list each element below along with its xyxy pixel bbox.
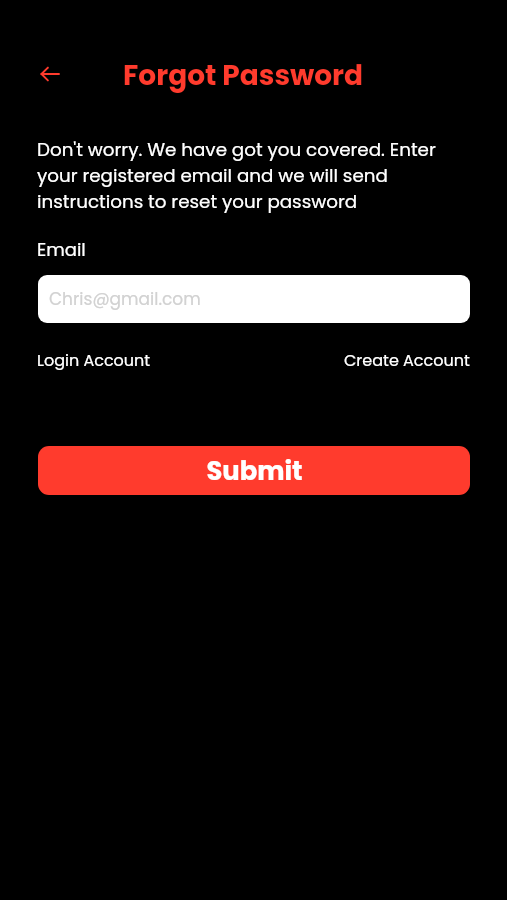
button[interactable]: Submit	[38, 446, 470, 495]
button[interactable]: Login Account	[37, 349, 151, 371]
button[interactable]: Create Account	[344, 349, 470, 371]
staticText: Don't worry. We have got you covered. En…	[37, 137, 447, 214]
staticText: Chris@gmail.com	[49, 287, 201, 311]
staticText: Email	[37, 237, 86, 262]
button[interactable]: Back	[29, 52, 73, 96]
staticText: Forgot Password	[123, 56, 364, 95]
staticText: Login Account	[37, 349, 151, 371]
staticText: Create Account	[344, 349, 470, 371]
staticText: Submit	[206, 453, 303, 489]
button[interactable]: Chris@gmail.com	[38, 275, 470, 323]
